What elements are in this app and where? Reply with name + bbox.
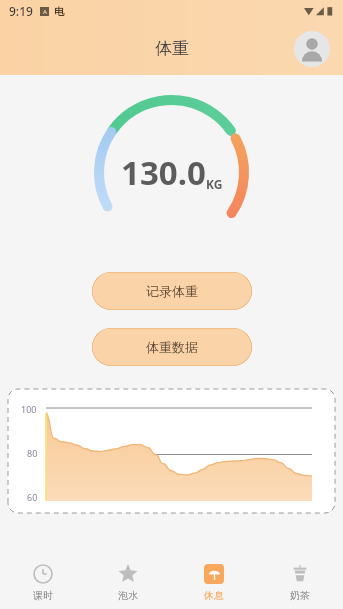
button[interactable]: 体重数据 — [92, 328, 252, 366]
staticText: 电 — [54, 5, 64, 18]
staticText: 休息 — [204, 589, 224, 602]
staticText: 60 — [27, 491, 38, 503]
button[interactable]: Profile — [294, 31, 330, 67]
staticText: 9:19 — [9, 3, 33, 19]
staticText: 80 — [27, 447, 38, 459]
button[interactable]: 课时 — [0, 557, 85, 609]
staticText: 记录体重 — [146, 283, 198, 299]
staticText: 课时 — [33, 589, 53, 602]
button[interactable]: 奶茶 — [257, 557, 343, 609]
button[interactable]: 泡水 — [85, 557, 171, 609]
staticText: 体重数据 — [146, 339, 198, 355]
staticText: 泡水 — [118, 589, 138, 602]
staticText: 奶茶 — [290, 589, 310, 602]
staticText: 130.0 — [121, 150, 206, 195]
button[interactable]: 休息 — [171, 557, 257, 609]
staticText: 100 — [21, 403, 37, 415]
button[interactable]: 记录体重 — [92, 272, 252, 310]
staticText: 体重 — [155, 38, 189, 59]
staticText: KG — [206, 176, 223, 192]
staticText: A — [43, 8, 47, 16]
